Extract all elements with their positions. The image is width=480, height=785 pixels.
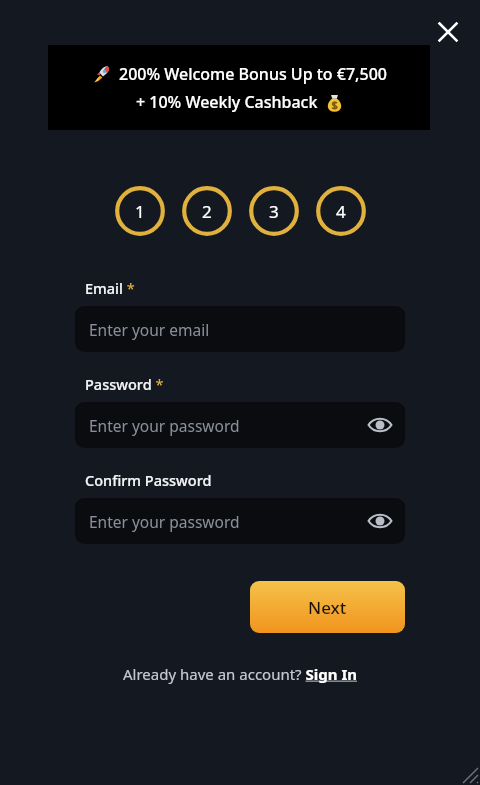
button[interactable]: Already have an account? Sign In: [113, 660, 367, 688]
button[interactable]: 1: [115, 186, 165, 236]
staticText: 2: [202, 200, 212, 223]
button[interactable]: Enter your email: [75, 306, 405, 352]
button[interactable]: Show password: [363, 504, 397, 538]
button[interactable]: 4: [316, 186, 366, 236]
staticText: + 10% Weekly Cashback: [136, 91, 318, 113]
staticText: Email *: [85, 278, 135, 298]
staticText: 4: [336, 200, 346, 223]
button[interactable]: Enter your password: [75, 498, 405, 544]
staticText: Password *: [85, 374, 164, 394]
button[interactable]: Next: [250, 581, 405, 633]
button[interactable]: Enter your password: [75, 402, 405, 448]
staticText: 200% Welcome Bonus Up to €7,500: [119, 63, 387, 85]
staticText: Next: [308, 596, 347, 619]
staticText: 3: [269, 200, 279, 223]
staticText: Enter your password: [89, 511, 240, 532]
button[interactable]: 2: [182, 186, 232, 236]
staticText: Already have an account? Sign In: [123, 664, 357, 684]
staticText: 1: [135, 200, 145, 223]
button[interactable]: Close: [430, 14, 466, 50]
staticText: Confirm Password: [85, 470, 212, 490]
button[interactable]: Show password: [363, 408, 397, 442]
button[interactable]: 3: [249, 186, 299, 236]
staticText: Enter your email: [89, 319, 210, 340]
staticText: Enter your password: [89, 415, 240, 436]
button[interactable]: 200% Welcome Bonus Up to €7,500: [48, 45, 430, 130]
